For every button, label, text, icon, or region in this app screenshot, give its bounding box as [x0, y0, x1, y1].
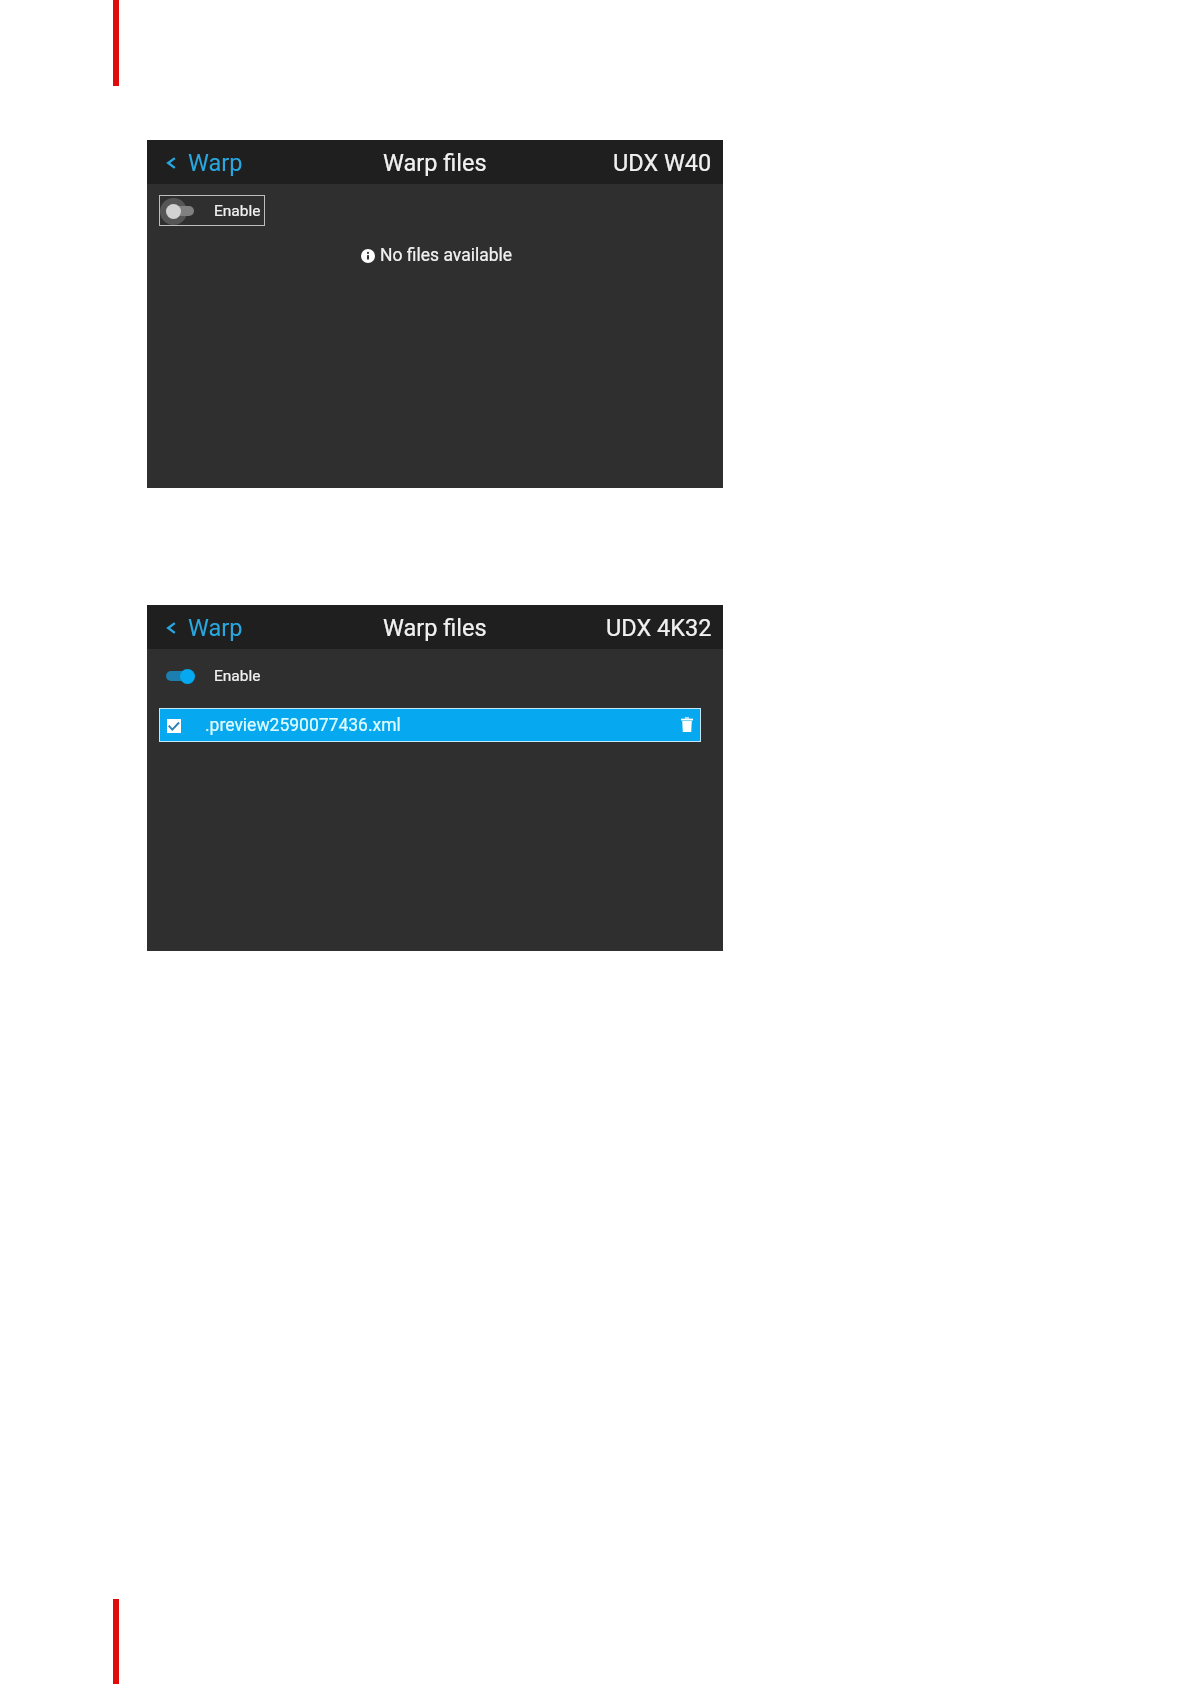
- staticText: UDX W40: [613, 149, 712, 177]
- staticText: UDX 4K32: [606, 614, 712, 642]
- staticText: Warp: [188, 614, 243, 642]
- button[interactable]: Back to Warp: [147, 144, 253, 180]
- button[interactable]: .preview2590077436.xml: [159, 708, 701, 742]
- staticText: .preview2590077436.xml: [205, 715, 401, 736]
- button[interactable]: Back to Warp: [147, 609, 253, 645]
- button[interactable]: Enable: [159, 660, 265, 691]
- staticText: No files available: [380, 245, 513, 266]
- button[interactable]: Delete file: [672, 709, 700, 741]
- staticText: Enable: [214, 202, 261, 220]
- staticText: Warp files: [383, 614, 487, 642]
- button[interactable]: Enable: [159, 195, 265, 226]
- staticText: Enable: [214, 667, 261, 685]
- staticText: Warp files: [383, 149, 487, 177]
- staticText: Warp: [188, 149, 243, 177]
